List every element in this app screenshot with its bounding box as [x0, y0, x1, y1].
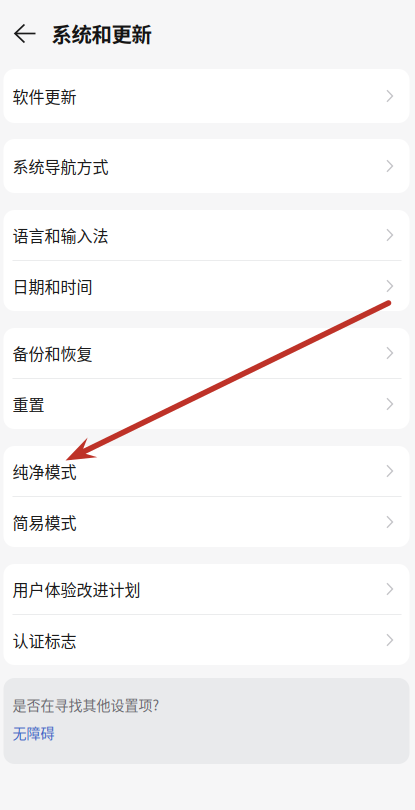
button[interactable]: 重置 [3, 379, 409, 429]
button[interactable]: 认证标志 [3, 615, 409, 665]
staticText: 简易模式 [12, 510, 76, 534]
button[interactable]: 用户体验改进计划 [3, 564, 409, 614]
staticText: 系统导航方式 [12, 154, 108, 178]
button[interactable]: 无障碍 [12, 722, 54, 742]
button[interactable]: 简易模式 [3, 497, 409, 547]
button[interactable]: 系统导航方式 [3, 139, 409, 193]
button[interactable]: 软件更新 [3, 69, 409, 123]
staticText: 认证标志 [12, 628, 76, 652]
staticText: 系统和更新 [51, 19, 151, 48]
button[interactable]: 备份和恢复 [3, 328, 409, 378]
staticText: 用户体验改进计划 [12, 577, 140, 601]
staticText: 纯净模式 [12, 459, 76, 483]
button[interactable]: 日期和时间 [3, 261, 409, 311]
staticText: 语言和输入法 [12, 223, 108, 247]
staticText: 无障碍 [12, 722, 54, 743]
button[interactable]: 返回 [0, 0, 51, 67]
staticText: 软件更新 [12, 84, 76, 108]
staticText: 日期和时间 [12, 274, 92, 298]
button[interactable]: 纯净模式 [3, 446, 409, 496]
staticText: 是否在寻找其他设置项? [12, 694, 159, 715]
button[interactable]: 语言和输入法 [3, 210, 409, 260]
staticText: 备份和恢复 [12, 341, 92, 365]
staticText: 重置 [12, 392, 44, 416]
